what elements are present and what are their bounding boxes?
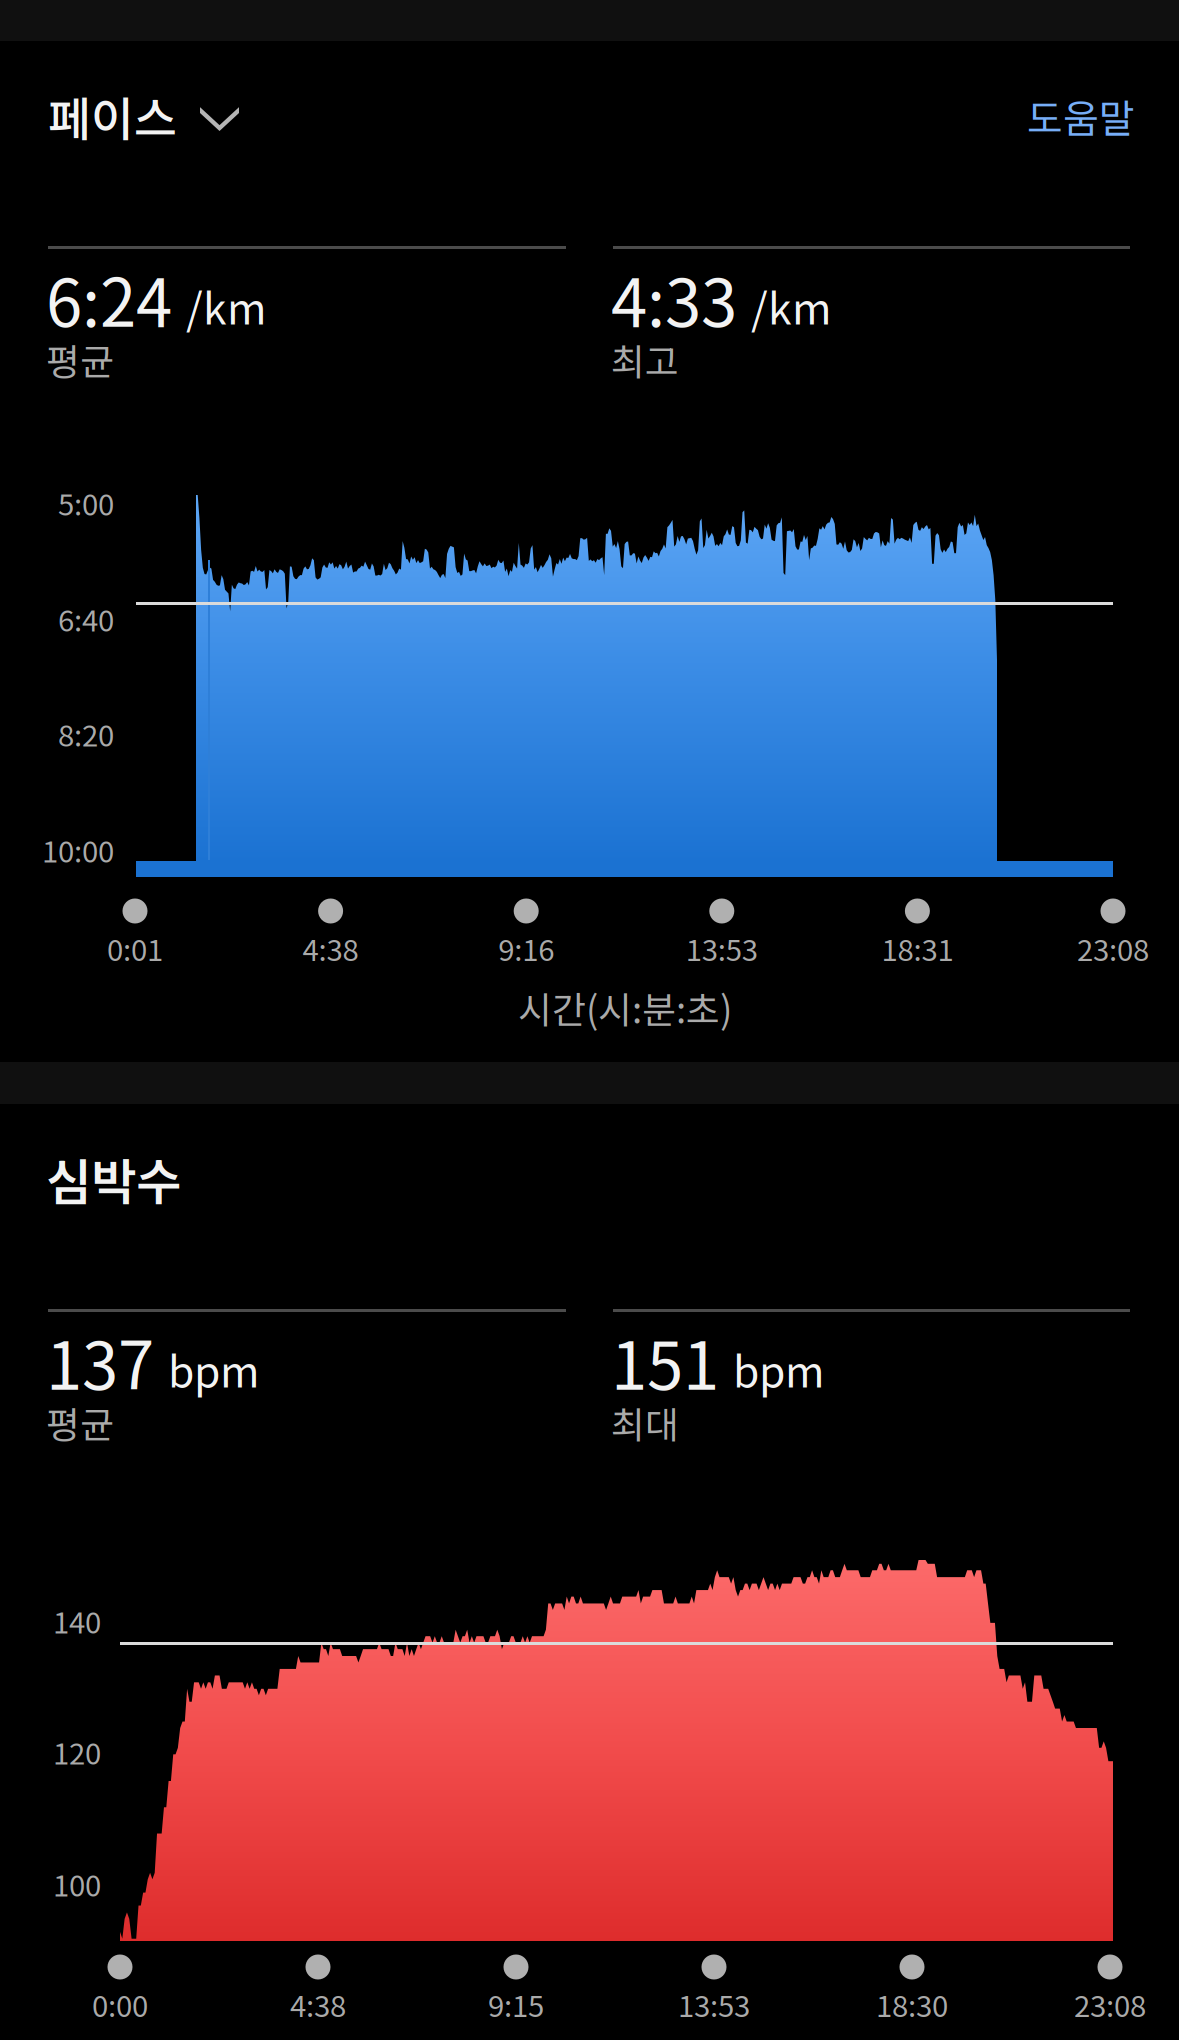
staticText: 18:31: [881, 927, 953, 969]
staticText: 8:20: [58, 712, 114, 755]
staticText: 도움말: [1027, 88, 1135, 144]
staticText: 0:01: [107, 927, 163, 969]
staticText: 10:00: [42, 828, 114, 871]
staticText: 평균: [46, 333, 114, 386]
staticText: 6:24: [46, 251, 172, 346]
staticText: 100: [53, 1862, 101, 1905]
staticText: 13:53: [686, 927, 758, 969]
staticText: 151: [611, 1314, 719, 1409]
staticText: 9:16: [498, 927, 554, 969]
staticText: bpm: [168, 1338, 260, 1400]
staticText: 140: [53, 1599, 101, 1642]
staticText: 시간(시:분:초): [518, 981, 732, 1034]
staticText: 6:40: [58, 597, 114, 640]
staticText: 4:38: [290, 1983, 346, 2025]
staticText: /km: [186, 275, 267, 337]
staticText: 4:33: [611, 251, 737, 346]
staticText: 23:08: [1077, 927, 1149, 969]
staticText: 5:00: [58, 481, 114, 524]
button[interactable]: 페이스: [48, 80, 298, 154]
staticText: 13:53: [678, 1983, 750, 2025]
staticText: 120: [53, 1730, 101, 1773]
button[interactable]: 도움말: [1021, 84, 1141, 148]
staticText: 9:15: [488, 1983, 544, 2025]
staticText: /km: [751, 275, 832, 337]
staticText: 137: [46, 1314, 154, 1409]
staticText: 0:00: [92, 1983, 148, 2025]
staticText: 페이스: [48, 82, 177, 150]
staticText: 최대: [611, 1396, 679, 1449]
staticText: 4:38: [303, 927, 359, 969]
staticText: 심박수: [46, 1143, 181, 1214]
staticText: 최고: [611, 333, 679, 386]
staticText: bpm: [733, 1338, 825, 1400]
staticText: 23:08: [1074, 1983, 1146, 2025]
staticText: 18:30: [876, 1983, 948, 2025]
staticText: 평균: [46, 1396, 114, 1449]
